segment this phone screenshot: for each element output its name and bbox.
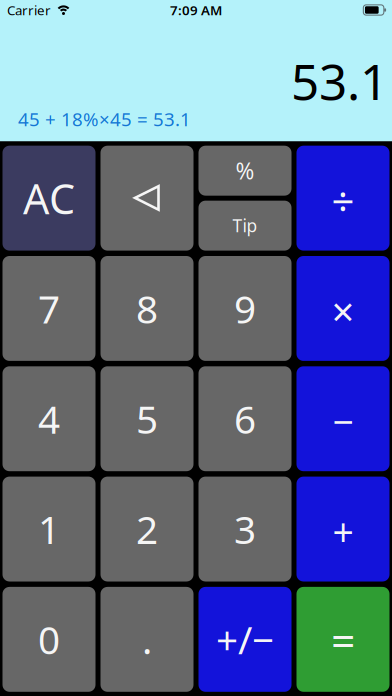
staticText: 2 <box>136 503 158 555</box>
staticText: 0 <box>38 614 60 665</box>
staticText: + <box>332 507 353 556</box>
button[interactable]: AC <box>2 146 95 251</box>
staticText: AC <box>23 171 75 226</box>
button[interactable]: . <box>100 587 193 692</box>
staticText: 7 <box>38 283 60 334</box>
button[interactable]: = <box>296 587 389 692</box>
button[interactable]: 5 <box>100 366 193 471</box>
button[interactable]: Backspace <box>100 146 193 251</box>
button[interactable]: +/− <box>198 587 291 692</box>
staticText: ÷ <box>331 174 354 227</box>
staticText: 3 <box>234 503 256 555</box>
staticText: = <box>331 611 355 668</box>
button[interactable]: 9 <box>198 256 291 361</box>
staticText: 7:09 AM <box>170 1 222 19</box>
staticText: × <box>331 284 354 337</box>
button[interactable]: 7 <box>2 256 95 361</box>
staticText: 4 <box>38 393 60 444</box>
staticText: 5 <box>136 393 158 444</box>
button[interactable]: 1 <box>2 477 95 581</box>
button[interactable]: − <box>296 366 389 471</box>
staticText: 45 + 18%×45 = 53.1 <box>18 107 191 131</box>
staticText: . <box>142 614 152 665</box>
button[interactable]: + <box>296 477 389 581</box>
button[interactable]: 6 <box>198 366 291 471</box>
button[interactable]: % <box>198 146 291 196</box>
staticText: +/− <box>216 614 274 665</box>
staticText: − <box>332 396 353 446</box>
staticText: % <box>235 156 254 186</box>
button[interactable]: 8 <box>100 256 193 361</box>
button[interactable]: 2 <box>100 477 193 581</box>
staticText: Tip <box>232 214 257 237</box>
staticText: Carrier <box>7 1 51 19</box>
button[interactable]: × <box>296 256 389 361</box>
button[interactable]: 0 <box>2 587 95 692</box>
staticText: 6 <box>234 393 256 444</box>
button[interactable]: ÷ <box>296 146 389 251</box>
staticText: 1 <box>38 503 60 555</box>
staticText: 9 <box>234 283 256 334</box>
button[interactable]: 3 <box>198 477 291 581</box>
staticText: 8 <box>136 283 158 334</box>
button[interactable]: Tip <box>198 201 291 251</box>
button[interactable]: 4 <box>2 366 95 471</box>
staticText: 53.1 <box>291 48 388 114</box>
